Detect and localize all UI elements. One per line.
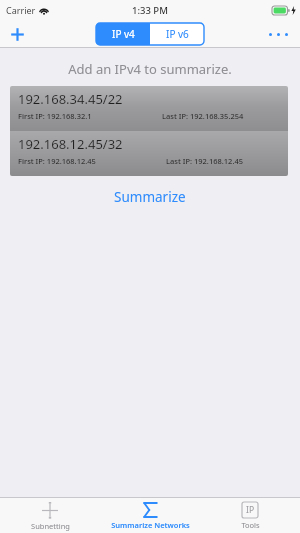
button[interactable]: IP v6 [150,23,204,45]
button[interactable]: Summarize Networks [100,498,200,533]
button[interactable]: 192.168.12.45/32 [10,131,288,176]
staticText: First IP: 192.168.12.45 [18,156,96,166]
button[interactable]: More options [256,20,300,48]
button[interactable]: Subnetting [0,498,100,533]
staticText: 192.168.12.45/32 [18,135,123,153]
staticText: 1:33 PM [132,4,168,17]
staticText: IP v6 [166,27,189,41]
staticText: 192.168.34.45/22 [18,90,123,108]
button[interactable]: IP v4 [96,23,150,45]
staticText: IP [246,504,255,516]
staticText: Summarize Networks [111,520,190,530]
button[interactable]: Add [0,20,34,48]
staticText: Tools [241,520,260,530]
button[interactable]: 192.168.34.45/22 [10,86,288,131]
staticText: First IP: 192.168.32.1 [18,111,92,121]
staticText: Summarize [114,188,186,206]
button[interactable]: IP [200,498,300,533]
staticText: Subnetting [31,521,70,531]
staticText: Last IP: 192.168.35.254 [162,111,244,121]
staticText: Add an IPv4 to summarize. [0,60,300,78]
button[interactable]: Summarize [0,188,300,206]
staticText: IP v4 [112,27,135,41]
staticText: Carrier [6,4,36,16]
staticText: Last IP: 192.168.12.45 [166,156,244,166]
